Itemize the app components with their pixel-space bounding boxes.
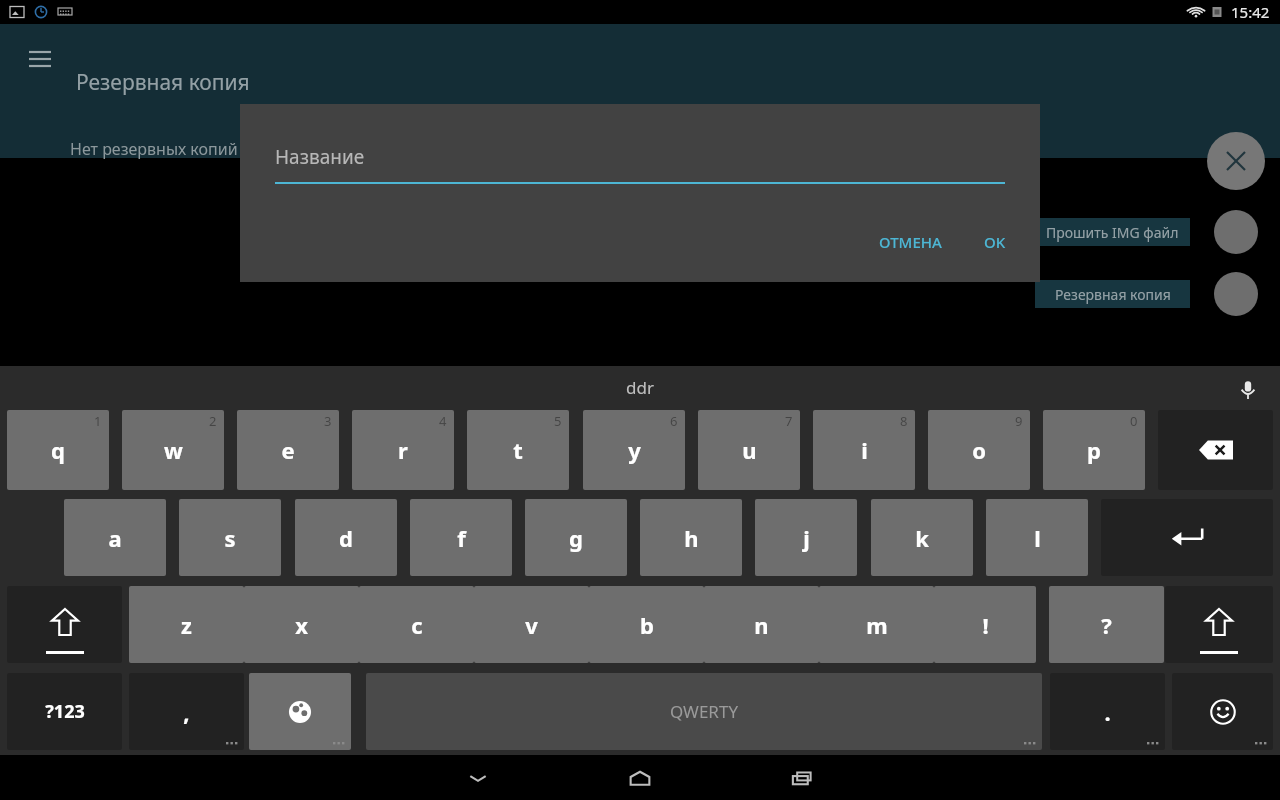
staticText: ? xyxy=(1101,610,1112,640)
staticText: s xyxy=(224,523,236,553)
staticText: d xyxy=(339,523,353,553)
button[interactable]: l xyxy=(986,499,1088,576)
staticText: g xyxy=(569,523,583,553)
button[interactable]: OK xyxy=(972,226,1018,258)
staticText: Резервная копия xyxy=(1055,285,1171,304)
button[interactable]: i xyxy=(813,410,915,490)
button[interactable]: y xyxy=(583,410,685,490)
staticText: q xyxy=(51,435,65,465)
staticText: Нет резервных копий xyxy=(70,138,238,160)
button[interactable]: Change language xyxy=(249,673,351,750)
staticText: OK xyxy=(984,232,1006,252)
staticText: p xyxy=(1087,435,1101,465)
staticText: h xyxy=(684,523,699,553)
button[interactable]: Menu xyxy=(18,37,62,81)
button[interactable]: w xyxy=(122,410,224,490)
staticText: 5 xyxy=(554,412,562,430)
button[interactable]: Close xyxy=(1207,132,1265,190)
staticText: m xyxy=(866,610,888,640)
staticText: ! xyxy=(982,610,989,640)
button[interactable]: g xyxy=(525,499,627,576)
staticText: z xyxy=(181,610,192,640)
staticText: k xyxy=(915,523,929,553)
button[interactable]: Home xyxy=(617,755,663,800)
button[interactable]: a xyxy=(64,499,166,576)
button[interactable]: . xyxy=(1050,673,1165,750)
button[interactable]: j xyxy=(755,499,857,576)
staticText: e xyxy=(281,435,295,465)
staticText: 9 xyxy=(1015,412,1023,430)
button[interactable]: Резервная копия xyxy=(1214,272,1258,316)
button[interactable]: Enter xyxy=(1101,499,1273,576)
staticText: b xyxy=(640,610,654,640)
staticText: 3 xyxy=(324,412,332,430)
staticText: 2 xyxy=(209,412,217,430)
button[interactable]: Shift xyxy=(1165,586,1273,663)
staticText: 1 xyxy=(94,412,102,430)
button[interactable]: Backspace xyxy=(1158,410,1273,490)
button[interactable]: Space xyxy=(366,673,1042,750)
staticText: y xyxy=(628,435,641,465)
button[interactable]: Hide keyboard xyxy=(456,756,500,800)
button[interactable]: b xyxy=(589,586,704,663)
staticText: QWERTY xyxy=(670,700,739,723)
staticText: . xyxy=(1104,697,1111,727)
staticText: ?123 xyxy=(45,699,85,724)
button[interactable]: c xyxy=(359,586,474,663)
staticText: l xyxy=(1034,523,1041,553)
button[interactable]: s xyxy=(179,499,281,576)
staticText: 7 xyxy=(785,412,793,430)
button[interactable]: ?123 xyxy=(7,673,122,750)
staticText: Название xyxy=(275,144,365,170)
button[interactable]: r xyxy=(352,410,454,490)
button[interactable]: n xyxy=(704,586,819,663)
staticText: o xyxy=(972,435,986,465)
staticText: u xyxy=(742,435,757,465)
button[interactable]: ! xyxy=(934,586,1036,663)
staticText: 4 xyxy=(439,412,447,430)
button[interactable]: Прошить IMG файл xyxy=(1035,218,1190,246)
staticText: j xyxy=(803,523,810,553)
button[interactable]: e xyxy=(237,410,339,490)
button[interactable]: , xyxy=(129,673,244,750)
button[interactable]: t xyxy=(467,410,569,490)
button[interactable]: Прошить IMG файл xyxy=(1214,210,1258,254)
button[interactable]: Резервная копия xyxy=(1035,280,1190,308)
staticText: w xyxy=(164,435,183,465)
staticText: , xyxy=(183,697,190,727)
staticText: 8 xyxy=(900,412,908,430)
staticText: x xyxy=(295,610,308,640)
staticText: 6 xyxy=(670,412,678,430)
staticText: 0 xyxy=(1130,412,1138,430)
staticText: Прошить IMG файл xyxy=(1046,223,1179,242)
button[interactable]: d xyxy=(295,499,397,576)
button[interactable]: m xyxy=(819,586,934,663)
staticText: v xyxy=(525,610,538,640)
staticText: i xyxy=(861,435,868,465)
button[interactable]: Recents xyxy=(780,756,824,800)
staticText: f xyxy=(457,523,466,553)
staticText: ОТМЕНА xyxy=(879,232,942,252)
button[interactable]: o xyxy=(928,410,1030,490)
button[interactable]: k xyxy=(871,499,973,576)
button[interactable]: Emoji xyxy=(1172,673,1273,750)
button[interactable]: q xyxy=(7,410,109,490)
button[interactable]: z xyxy=(129,586,244,663)
button[interactable]: ? xyxy=(1049,586,1164,663)
button[interactable]: ОТМЕНА xyxy=(867,226,954,258)
button[interactable]: h xyxy=(640,499,742,576)
button[interactable]: x xyxy=(244,586,359,663)
staticText: n xyxy=(754,610,769,640)
staticText: a xyxy=(108,523,122,553)
button[interactable]: p xyxy=(1043,410,1145,490)
button[interactable]: Voice input xyxy=(1230,372,1266,408)
staticText: t xyxy=(513,435,523,465)
button[interactable]: Shift xyxy=(7,586,122,663)
button[interactable]: v xyxy=(474,586,589,663)
staticText: c xyxy=(411,610,423,640)
staticText: 15:42 xyxy=(1231,2,1270,22)
staticText: r xyxy=(398,435,408,465)
button[interactable]: u xyxy=(698,410,800,490)
staticText: Резервная копия xyxy=(76,68,250,97)
button[interactable]: f xyxy=(410,499,512,576)
